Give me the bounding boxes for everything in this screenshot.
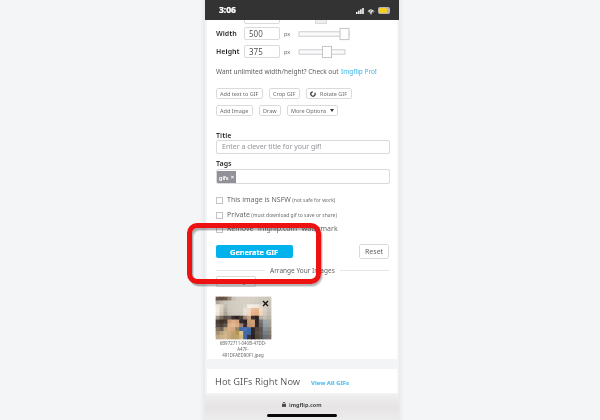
button[interactable]: Crop GIF — [269, 88, 300, 99]
staticText: Reset — [365, 247, 384, 257]
staticText: Add Image — [220, 107, 249, 114]
button[interactable]: Add text to GIF — [216, 88, 263, 99]
staticText: Remove "imgflip.com" watermark — [227, 224, 338, 234]
button[interactable]: Private — [216, 210, 337, 220]
staticText: 375 — [249, 46, 263, 57]
button[interactable]: Sort Images — [216, 276, 256, 287]
staticText: Width — [216, 29, 237, 39]
staticText: ! — [375, 67, 377, 76]
button[interactable]: Reset — [359, 244, 389, 259]
button[interactable]: Add Image — [216, 105, 253, 116]
staticText: Height — [216, 47, 240, 57]
button[interactable]: View All GIFs — [311, 380, 350, 388]
staticText: Want unlimited width/height? Check out — [216, 67, 341, 76]
staticText: Tags — [216, 159, 232, 169]
staticText: This image is NSFW — [227, 195, 291, 205]
staticText: Private — [227, 210, 250, 220]
staticText: gifs — [219, 174, 229, 181]
staticText: Sort Images — [220, 278, 252, 285]
button[interactable]: This image is NSFW — [216, 195, 336, 205]
staticText: px — [284, 30, 291, 37]
staticText: Title — [216, 131, 232, 141]
staticText: Arrange Your Images — [270, 266, 335, 275]
staticText: Add text to GIF — [220, 90, 259, 97]
staticText: 500 — [249, 28, 263, 39]
button[interactable]: gifs — [216, 169, 390, 184]
button[interactable]: More Options — [287, 105, 338, 116]
button[interactable]: Remove image — [263, 301, 268, 306]
staticText: imgflip.com — [289, 401, 322, 408]
staticText: Generate GIF — [230, 247, 279, 257]
staticText: Crop GIF — [273, 90, 296, 97]
staticText: (must download gif to save or share) — [250, 212, 337, 219]
staticText: Hot GIFs Right Now — [215, 375, 301, 388]
staticText: × — [231, 174, 234, 181]
staticText: (not safe for work) — [291, 197, 336, 204]
button[interactable]: Remove "imgflip.com" watermark — [216, 224, 338, 234]
button[interactable]: Rotate GIF — [306, 88, 352, 99]
staticText: 3:06 — [219, 4, 236, 16]
button[interactable]: Generate GIF — [216, 245, 293, 258]
staticText: Rotate GIF — [320, 90, 348, 97]
staticText: Enter a clever title for your gif! — [222, 142, 322, 152]
button[interactable]: Draw — [259, 105, 281, 116]
staticText: Draw — [263, 107, 277, 114]
button[interactable]: Enter a clever title for your gif! — [216, 140, 390, 154]
staticText: More Options — [291, 107, 327, 114]
staticText: Imgflip Pro — [341, 67, 375, 76]
staticText: px — [284, 48, 291, 55]
staticText: 6B972711-040B-47DD- A47F- 491DFAED90F1.j… — [212, 340, 274, 358]
